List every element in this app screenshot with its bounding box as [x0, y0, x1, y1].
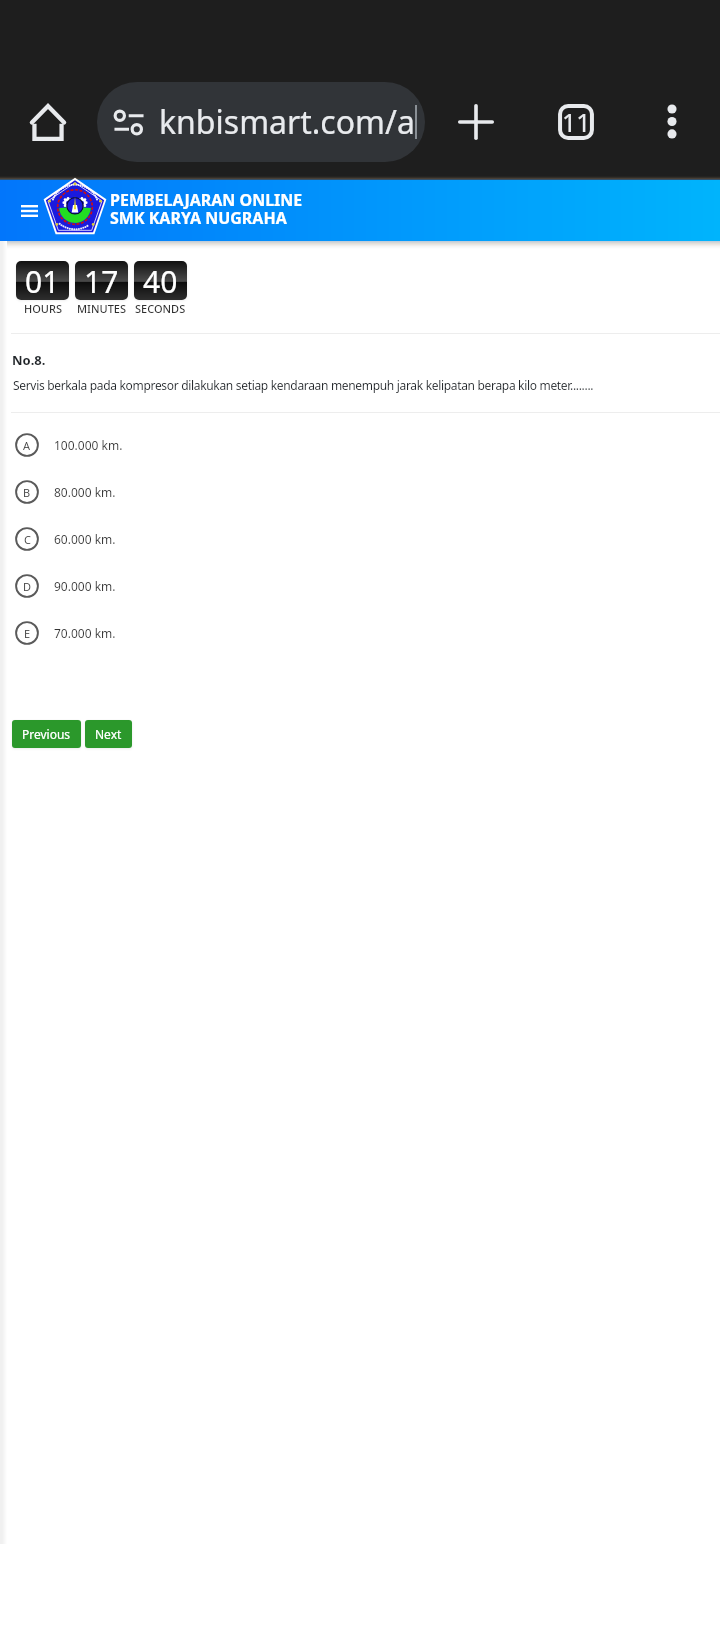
button[interactable]: More options: [648, 96, 696, 144]
staticText: 01: [25, 261, 60, 300]
button[interactable]: Home: [22, 98, 74, 150]
staticText: Next: [95, 726, 122, 742]
staticText: 60.000 km.: [54, 531, 116, 547]
staticText: 17: [84, 261, 119, 300]
staticText: D: [23, 579, 32, 594]
button[interactable]: A: [0, 421, 720, 468]
staticText: 90.000 km.: [54, 578, 116, 594]
staticText: No.8.: [12, 351, 46, 369]
button[interactable]: Previous: [12, 720, 81, 748]
staticText: C: [24, 532, 31, 547]
staticText: A: [23, 438, 31, 453]
button[interactable]: B: [0, 468, 720, 515]
staticText: knbismart.com/a: [159, 100, 415, 144]
staticText: 70.000 km.: [54, 625, 116, 641]
button[interactable]: New tab: [448, 94, 504, 150]
button[interactable]: E: [0, 609, 720, 656]
staticText: Previous: [22, 726, 71, 742]
staticText: B: [23, 485, 31, 500]
button[interactable]: Next: [85, 720, 132, 748]
staticText: HOURS: [24, 301, 62, 316]
staticText: MINUTES: [77, 301, 127, 316]
button[interactable]: C: [0, 515, 720, 562]
staticText: E: [24, 626, 31, 641]
button[interactable]: Tabs: [550, 96, 602, 148]
staticText: 40: [143, 261, 178, 300]
button[interactable]: D: [0, 562, 720, 609]
staticText: SMK KARYA NUGRAHA: [110, 207, 287, 229]
button[interactable]: Menu: [8, 180, 50, 241]
staticText: PEMBELAJARAN ONLINE: [110, 189, 303, 211]
staticText: 100.000 km.: [54, 437, 123, 453]
staticText: 80.000 km.: [54, 484, 116, 500]
staticText: SECONDS: [135, 301, 186, 316]
button[interactable]: knbismart.com/a: [97, 82, 425, 162]
staticText: Servis berkala pada kompresor dilakukan …: [13, 377, 594, 393]
staticText: 11: [562, 105, 591, 139]
